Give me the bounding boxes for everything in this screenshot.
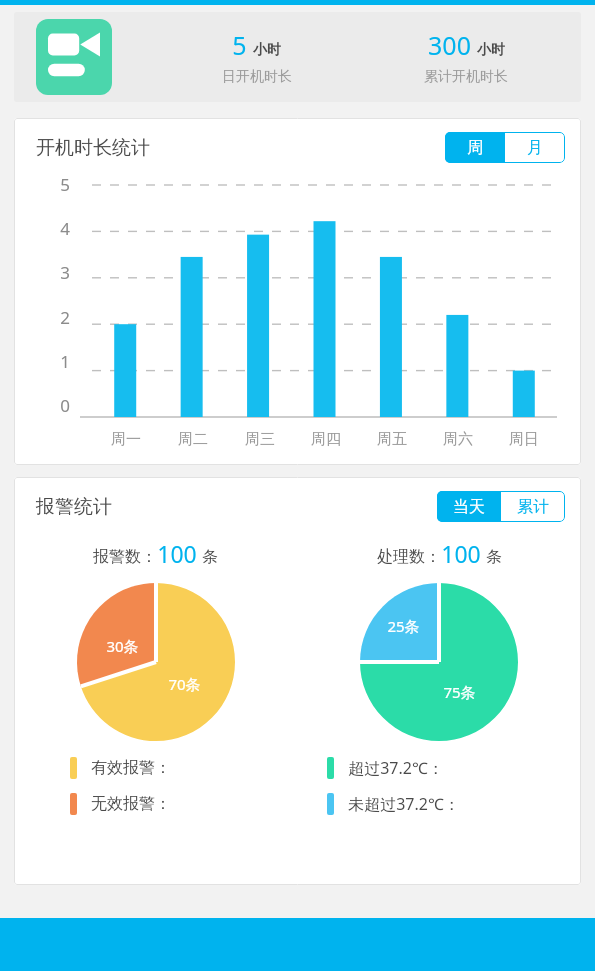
staticText: 周 (467, 138, 483, 158)
staticText: 累计 (517, 497, 549, 517)
staticText: 当天 (453, 497, 485, 517)
staticText: 条 (486, 547, 502, 567)
staticText: 3 (60, 261, 70, 284)
button[interactable]: 累计 (501, 491, 565, 522)
staticText: 条 (202, 547, 218, 567)
staticText: 2 (60, 306, 70, 329)
staticText: 1 (60, 350, 70, 373)
staticText: 5 (60, 173, 70, 196)
staticText: 100 (157, 538, 197, 569)
staticText: 无效报警： (91, 794, 171, 814)
button[interactable]: 月 (505, 132, 565, 163)
staticText: 日开机时长 (222, 68, 292, 86)
staticText: 报警数： (93, 547, 157, 567)
staticText: 超过37.2℃： (348, 757, 444, 779)
staticText: 周三 (245, 430, 275, 449)
button[interactable]: Camera (14, 12, 581, 102)
staticText: 70条 (168, 674, 201, 694)
staticText: 小时 (253, 41, 281, 59)
staticText: 100 (441, 538, 481, 569)
staticText: 月 (527, 138, 543, 158)
staticText: 累计开机时长 (424, 68, 508, 86)
staticText: 25条 (387, 616, 420, 636)
staticText: 周五 (377, 430, 407, 449)
staticText: 周日 (509, 430, 539, 449)
staticText: 有效报警： (91, 758, 171, 778)
other: Camera (36, 19, 112, 95)
staticText: 未超过37.2℃： (348, 793, 460, 815)
staticText: 30条 (106, 636, 139, 656)
staticText: 小时 (477, 41, 505, 59)
staticText: 开机时长统计 (36, 136, 150, 160)
staticText: 报警统计 (36, 495, 112, 519)
staticText: 周二 (178, 430, 208, 449)
staticText: 4 (60, 217, 70, 240)
staticText: 75条 (443, 682, 476, 702)
staticText: 周四 (311, 430, 341, 449)
staticText: 处理数： (377, 547, 441, 567)
staticText: 0 (60, 394, 70, 417)
button[interactable]: 周 (445, 132, 505, 163)
staticText: 300 (428, 28, 471, 62)
staticText: 周一 (111, 430, 141, 449)
staticText: 周六 (443, 430, 473, 449)
button[interactable]: 当天 (437, 491, 501, 522)
staticText: 5 (232, 28, 247, 62)
